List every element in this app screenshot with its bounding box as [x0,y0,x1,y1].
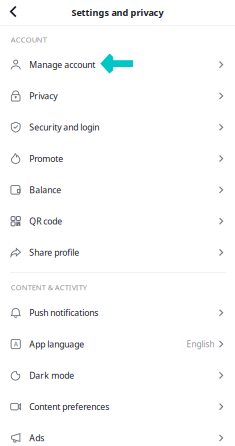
staticText: App language [29,338,84,350]
button[interactable]: Privacy [0,80,235,112]
button[interactable]: Content preferences [0,391,235,422]
staticText: QR code [29,215,62,227]
staticText: Balance [29,184,61,196]
button[interactable]: Back [0,0,26,25]
staticText: A [14,339,18,348]
button[interactable]: Push notifications [0,297,235,328]
button[interactable]: Balance [0,174,235,205]
staticText: CONTENT & ACTIVITY [11,282,87,292]
staticText: Push notifications [29,307,98,319]
staticText: English [186,338,214,350]
button[interactable]: Ads [0,422,235,446]
button[interactable]: Security and login [0,112,235,143]
staticText: Dark mode [29,369,74,381]
staticText: Share profile [29,246,79,258]
staticText: Security and login [29,121,99,133]
button[interactable]: QR code [0,205,235,237]
staticText: Content preferences [29,401,109,412]
staticText: Ads [29,432,44,444]
staticText: Privacy [29,90,57,102]
button[interactable]: Promote [0,143,235,174]
staticText: Manage account [29,59,95,70]
button[interactable]: Manage account [0,49,235,80]
button[interactable]: A [0,328,235,360]
button[interactable]: Share profile [0,237,235,268]
staticText: Promote [29,153,63,164]
staticText: ACCOUNT [11,34,47,45]
staticText: Settings and privacy [71,6,163,19]
button[interactable]: Dark mode [0,360,235,391]
